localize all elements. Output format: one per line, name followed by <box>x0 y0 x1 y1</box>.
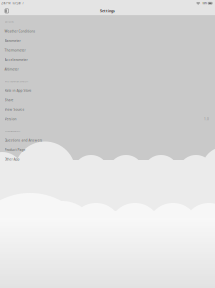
staticText: Rate in App Store <box>5 88 32 93</box>
staticText: Other App <box>5 157 20 161</box>
staticText: INFORMATION <box>5 129 21 133</box>
button[interactable]: Barometer <box>0 36 215 45</box>
staticText: Accelerometer <box>5 58 28 62</box>
button[interactable]: Thermometer <box>0 45 215 55</box>
staticText: 1.0 <box>204 117 209 121</box>
staticText: Product Page <box>5 147 26 152</box>
button[interactable]: View Source <box>0 105 215 114</box>
staticText: 100% <box>202 1 207 5</box>
staticText: Share <box>5 98 14 102</box>
button[interactable]: Weather Conditions <box>0 26 215 36</box>
staticText: THE WEATHER STATION <box>5 80 29 83</box>
button[interactable]: Other App <box>0 154 215 164</box>
staticText: Barometer <box>5 39 21 43</box>
button[interactable]: Version <box>0 114 215 124</box>
button[interactable]: Altimeter <box>0 64 215 74</box>
button[interactable]: Accelerometer <box>0 55 215 64</box>
staticText: Questions and Answers <box>5 138 43 142</box>
staticText: Settings <box>100 8 115 13</box>
staticText: Weather Conditions <box>5 29 36 33</box>
staticText: Thermometer <box>5 48 26 52</box>
button[interactable]: Rate in App Store <box>0 86 215 95</box>
staticText: Altimeter <box>5 67 19 71</box>
staticText: SENSORS <box>5 20 14 23</box>
staticText: 2:06 PM <box>1 1 10 5</box>
staticText: View Source <box>5 107 25 112</box>
button[interactable]: Product Page <box>0 145 215 154</box>
staticText: Version <box>5 117 17 121</box>
staticText: Tue Jan 7 <box>12 1 23 5</box>
button[interactable]: Show sidebar <box>4 8 10 14</box>
button[interactable]: Share <box>0 95 215 105</box>
button[interactable]: Questions and Answers <box>0 135 215 145</box>
